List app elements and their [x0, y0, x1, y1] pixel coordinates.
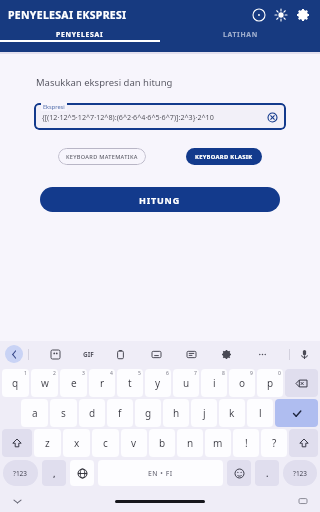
button[interactable]: Help — [248, 4, 270, 26]
button[interactable]: GIF — [83, 350, 94, 359]
staticText: x — [74, 436, 80, 450]
staticText: q — [12, 376, 19, 390]
staticText: 1 — [24, 370, 27, 377]
staticText: b — [159, 436, 166, 450]
button[interactable]: Settings — [218, 346, 235, 363]
button[interactable]: Settings — [292, 4, 314, 26]
staticText: i — [213, 376, 216, 390]
staticText: e — [71, 376, 77, 390]
staticText: GIF — [83, 350, 94, 359]
button[interactable]: n — [177, 429, 203, 457]
staticText: KEYBOARD KLASIK — [195, 153, 253, 161]
button[interactable]: j — [191, 399, 217, 427]
staticText: ? — [272, 436, 277, 450]
button[interactable]: . — [255, 460, 279, 486]
button[interactable]: KEYBOARD MATEMATIKA — [58, 148, 146, 165]
button[interactable]: HITUNG — [40, 187, 280, 212]
staticText: w — [41, 376, 49, 390]
staticText: ?123 — [13, 469, 28, 478]
button[interactable]: {[(12·12^5·12^7·12^8):(6^2·6^4·6^5·6^7)]… — [34, 103, 286, 130]
button[interactable]: g — [135, 399, 161, 427]
staticText: s — [61, 406, 66, 420]
staticText: LATIHAN — [223, 30, 258, 39]
staticText: , — [53, 467, 56, 479]
staticText: 5 — [138, 370, 141, 377]
staticText: f — [118, 406, 122, 420]
staticText: p — [267, 376, 274, 390]
button[interactable]: Backspace — [285, 369, 318, 397]
staticText: y — [155, 376, 161, 390]
button[interactable]: o — [229, 369, 255, 397]
button[interactable]: v — [121, 429, 147, 457]
button[interactable]: r — [89, 369, 115, 397]
button[interactable]: Shift — [2, 429, 32, 457]
button[interactable]: t — [117, 369, 143, 397]
button[interactable]: s — [50, 399, 77, 427]
button[interactable]: a — [21, 399, 48, 427]
staticText: ?123 — [293, 469, 308, 478]
button[interactable]: Theme — [183, 346, 200, 363]
button[interactable]: Translate — [148, 346, 165, 363]
button[interactable]: Clipboard — [112, 346, 129, 363]
button[interactable]: Back — [5, 345, 23, 363]
staticText: 6 — [166, 370, 169, 377]
button[interactable]: m — [205, 429, 231, 457]
button[interactable]: q — [2, 369, 29, 397]
button[interactable]: i — [201, 369, 227, 397]
button[interactable]: l — [247, 399, 273, 427]
staticText: . — [266, 467, 269, 479]
button[interactable]: Switch keyboard — [296, 494, 310, 508]
button[interactable]: LATIHAN — [160, 30, 320, 42]
button[interactable]: b — [149, 429, 175, 457]
staticText: h — [173, 406, 180, 420]
button[interactable]: , — [42, 460, 66, 486]
staticText: l — [259, 406, 262, 420]
button[interactable]: ?123 — [283, 460, 317, 486]
staticText: ! — [245, 436, 248, 450]
button[interactable]: ? — [261, 429, 287, 457]
staticText: HITUNG — [139, 194, 181, 206]
button[interactable]: Voice input — [296, 346, 313, 363]
staticText: g — [145, 406, 152, 420]
button[interactable]: h — [163, 399, 189, 427]
staticText: Ekspresi — [43, 103, 65, 111]
staticText: 3 — [82, 370, 85, 377]
button[interactable]: z — [34, 429, 61, 457]
staticText: j — [203, 406, 206, 420]
staticText: 4 — [110, 370, 113, 377]
button[interactable]: Shift — [289, 429, 318, 457]
button[interactable]: ! — [233, 429, 259, 457]
button[interactable]: KEYBOARD KLASIK — [186, 148, 262, 165]
button[interactable]: Enter — [275, 399, 318, 427]
button[interactable]: p — [257, 369, 283, 397]
button[interactable]: Emoji — [227, 460, 251, 486]
staticText: 0 — [278, 370, 281, 377]
button[interactable]: More options — [254, 346, 271, 363]
button[interactable]: ?123 — [3, 460, 38, 486]
staticText: o — [239, 376, 246, 390]
button[interactable]: e — [60, 369, 87, 397]
staticText: n — [187, 436, 194, 450]
button[interactable]: x — [63, 429, 90, 457]
button[interactable]: PENYELESAI — [0, 30, 160, 42]
staticText: 2 — [53, 370, 56, 377]
button[interactable]: c — [92, 429, 119, 457]
button[interactable]: f — [107, 399, 133, 427]
staticText: v — [131, 436, 137, 450]
button[interactable]: y — [145, 369, 171, 397]
button[interactable]: u — [173, 369, 199, 397]
button[interactable]: d — [79, 399, 105, 427]
button[interactable]: EN • FI — [98, 460, 223, 486]
staticText: PENYELESAI EKSPRESI — [8, 8, 127, 22]
staticText: c — [103, 436, 108, 450]
button[interactable]: Brightness — [270, 4, 292, 26]
button[interactable]: Hide keyboard — [10, 494, 24, 508]
button[interactable]: Change language — [70, 460, 94, 486]
staticText: Masukkan ekspresi dan hitung — [36, 76, 173, 89]
button[interactable]: Clear — [264, 109, 280, 125]
staticText: EN • FI — [148, 469, 173, 478]
button[interactable]: Sticker — [47, 346, 64, 363]
button[interactable]: k — [219, 399, 245, 427]
staticText: m — [213, 436, 223, 450]
button[interactable]: w — [31, 369, 58, 397]
